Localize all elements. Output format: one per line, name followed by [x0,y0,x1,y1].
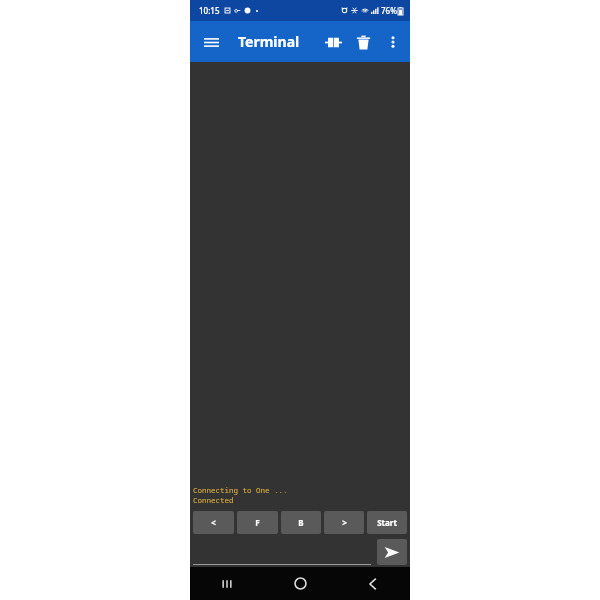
button[interactable]: Open navigation menu [198,29,224,55]
button[interactable]: Send [377,539,407,565]
staticText: Connected [193,495,234,505]
staticText: 76% [381,5,397,16]
button[interactable]: Clear terminal [348,27,378,57]
staticText: B [298,517,304,528]
staticText: F [255,517,260,528]
button[interactable]: Back [356,567,390,600]
button[interactable]: < [193,511,234,534]
staticText: 10:15 [199,5,220,16]
button[interactable]: More options [378,27,408,57]
staticText: Connecting to One ... [193,485,288,495]
button[interactable]: Recent apps [210,567,244,600]
button[interactable]: Connect [318,27,348,57]
button[interactable]: B [281,511,321,534]
button[interactable]: > [324,511,364,534]
button[interactable]: Start [367,511,407,534]
button[interactable] [193,539,371,565]
staticText: > [342,517,347,528]
staticText: < [211,517,216,528]
staticText: Start [377,517,397,528]
staticText: Terminal [238,32,300,51]
button[interactable]: Home [283,567,317,600]
button[interactable]: F [237,511,278,534]
